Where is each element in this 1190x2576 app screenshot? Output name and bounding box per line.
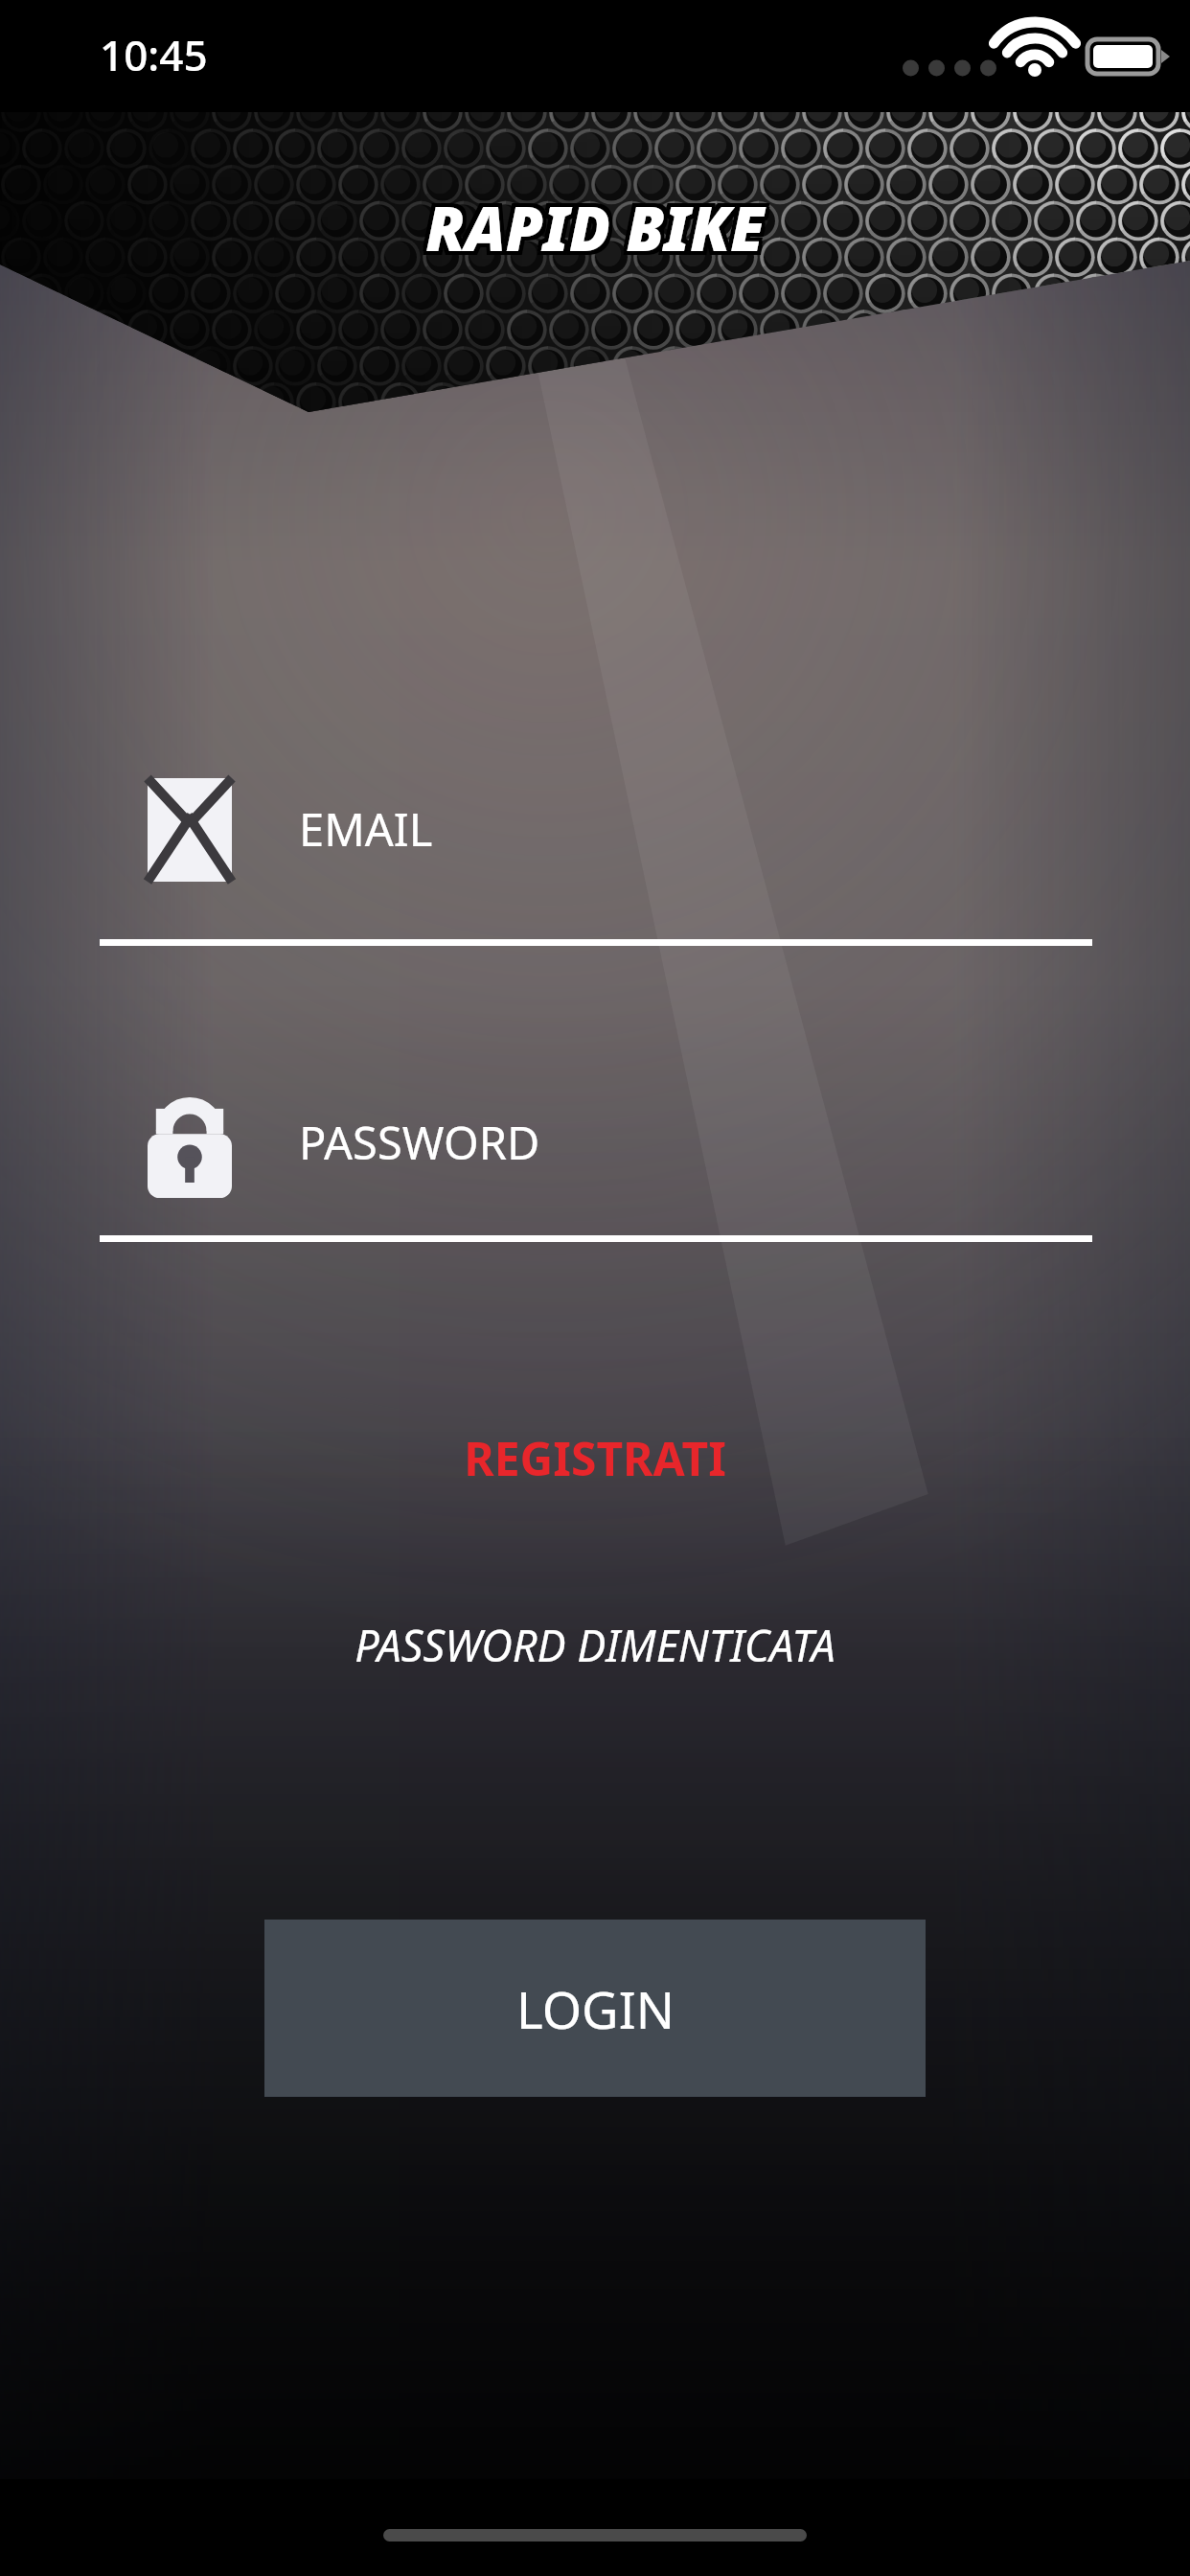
staticText: LOGIN: [516, 1974, 675, 2043]
button[interactable]: PASSWORD DIMENTICATA: [0, 1601, 1190, 1688]
staticText: PASSWORD DIMENTICATA: [355, 1616, 835, 1674]
staticText: RAPID BIKE: [422, 191, 761, 273]
staticText: RAPID BIKE: [425, 191, 765, 273]
button[interactable]: Email: [0, 767, 1190, 891]
staticText: EMAIL: [299, 798, 433, 860]
button[interactable]: REGISTRATI: [0, 1414, 1190, 1501]
button[interactable]: LOGIN: [264, 1920, 926, 2097]
staticText: PASSWORD: [299, 1112, 540, 1173]
staticText: REGISTRATI: [464, 1427, 726, 1489]
staticText: RAPID BIKE: [429, 187, 768, 269]
staticText: RAPID BIKE: [425, 187, 765, 269]
staticText: RAPID BIKE: [422, 187, 761, 269]
staticText: RAPID BIKE: [429, 191, 768, 273]
staticText: RAPID BIKE: [425, 183, 765, 265]
button[interactable]: Password: [0, 1080, 1190, 1205]
staticText: RAPID BIKE: [422, 183, 761, 265]
staticText: RAPID BIKE: [429, 183, 768, 265]
staticText: 10:45: [100, 26, 208, 83]
other: Status icons: [891, 33, 1131, 80]
